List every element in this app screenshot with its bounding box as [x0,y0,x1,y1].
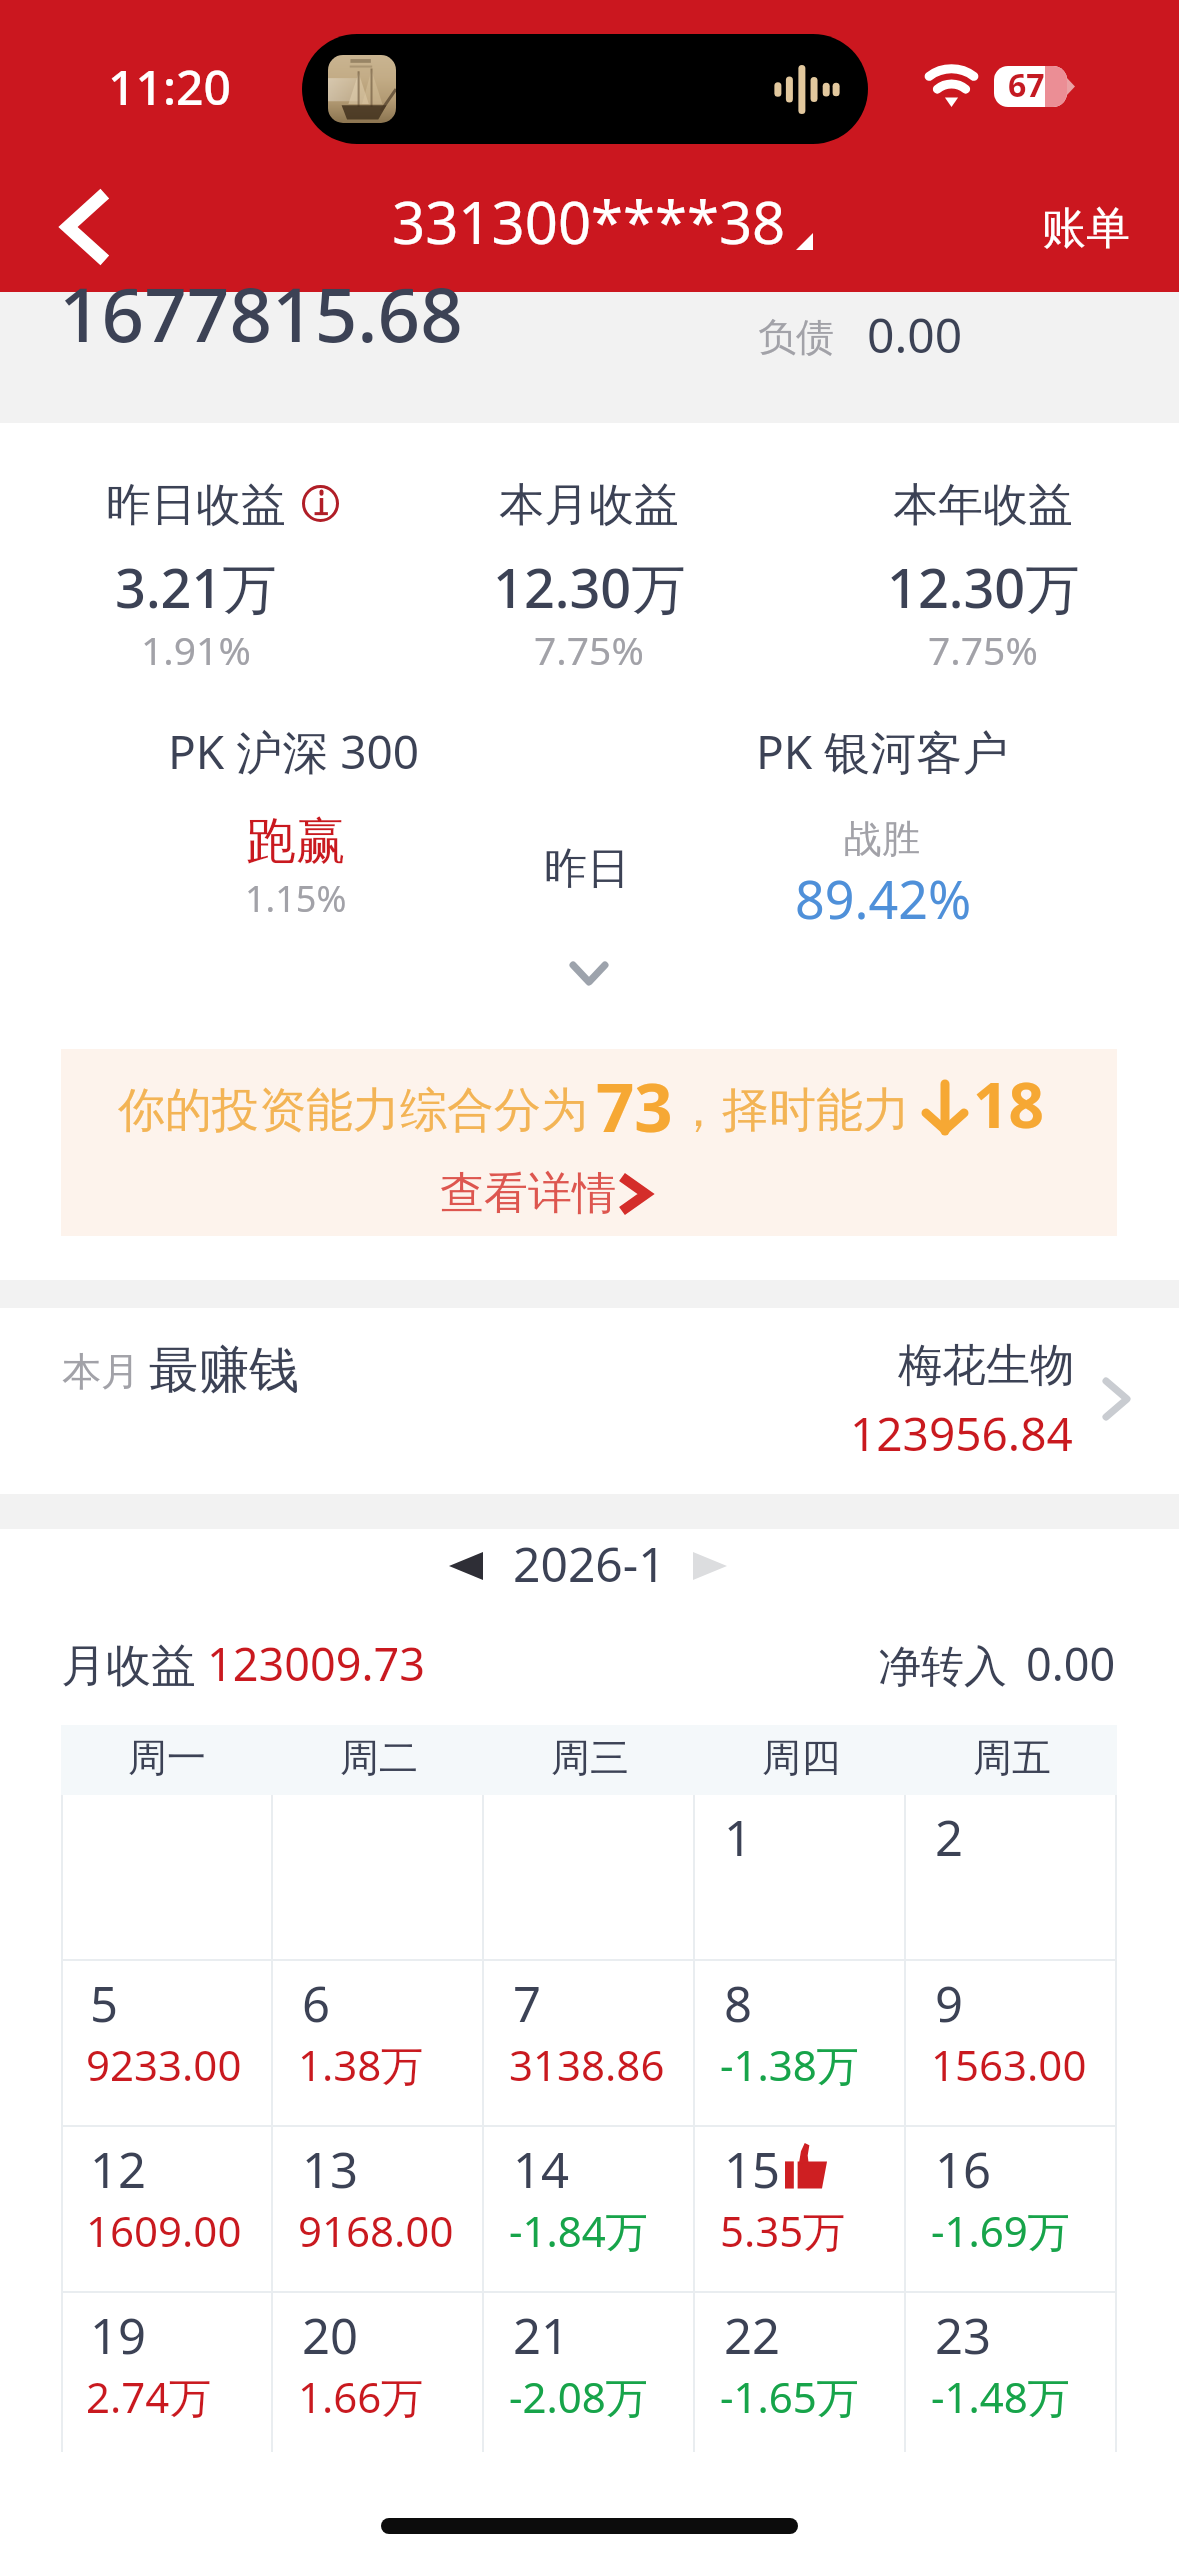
button[interactable]: 14 [484,2127,695,2293]
staticText: 19 [90,2302,147,2369]
staticText: -1.65万 [720,2368,859,2425]
button[interactable]: 19 [61,2293,273,2452]
staticText: 13 [302,2136,359,2203]
button[interactable]: Expand [529,926,649,1021]
staticText: 1563.00 [931,2036,1087,2093]
button[interactable]: 本月收益 [329,477,849,534]
staticText: PK 沪深 300 [168,720,420,783]
staticText: 7.75% [928,623,1038,676]
staticText: 12.30万 [493,550,686,624]
staticText: 1 [724,1804,753,1871]
staticText: 331300****38 [392,182,786,261]
staticText: 123009.73 [207,1633,425,1694]
staticText: 12.30万 [887,550,1080,624]
staticText: 20 [302,2302,359,2369]
staticText: 昨日收益 [106,477,286,534]
staticText: 最赚钱 [149,1339,299,1402]
button[interactable]: 15 [695,2127,906,2293]
button[interactable]: 本年收益 [723,477,1179,534]
staticText: 7.75% [534,623,644,676]
staticText: 11:20 [108,54,231,119]
button[interactable]: Previous month [418,1518,514,1614]
staticText: 周二 [340,1733,418,1782]
staticText: 周四 [762,1733,840,1782]
staticText: 1.66万 [298,2368,424,2425]
button[interactable]: 6 [273,1961,484,2127]
button[interactable]: 账单 [1010,176,1150,276]
staticText: 8 [724,1970,753,2037]
button[interactable]: 12 [61,2127,273,2293]
button[interactable]: 昨日收益 [0,477,456,534]
staticText: 9 [935,1970,964,2037]
staticText: -1.38万 [720,2036,859,2093]
staticText: ，择时能力 [675,1081,910,1140]
staticText: 1677815.68 [59,262,463,363]
staticText: -2.08万 [509,2368,648,2425]
staticText: 净转入 [878,1640,1007,1694]
button[interactable]: 9 [906,1961,1117,2127]
button[interactable]: 16 [906,2127,1117,2293]
button[interactable]: 331300****38 [380,180,823,280]
staticText: 1.38万 [298,2036,424,2093]
staticText: 21 [513,2302,570,2369]
staticText: 3.21万 [115,550,277,624]
button[interactable] [61,1795,273,1961]
staticText: 9168.00 [298,2202,454,2259]
button[interactable]: 8 [695,1961,906,2127]
staticText: 14 [513,2136,570,2203]
staticText: 跑赢 [246,810,346,873]
staticText: 1.91% [141,623,251,676]
staticText: 1.15% [245,874,347,923]
button[interactable]: PK 银河客户 [622,720,1142,783]
button[interactable]: 2 [906,1795,1117,1961]
staticText: 周三 [551,1733,629,1782]
button[interactable]: Back [24,167,144,287]
staticText: 本月收益 [499,477,679,534]
button[interactable]: 20 [273,2293,484,2452]
staticText: 73 [596,1060,673,1151]
button[interactable]: 5 [61,1961,273,2127]
staticText: 2 [935,1804,964,1871]
button[interactable]: Next month [662,1518,758,1614]
staticText: 0.00 [1026,1633,1116,1694]
staticText: PK 银河客户 [756,720,1009,783]
staticText: 67 [1008,66,1045,104]
staticText: 2.74万 [86,2368,212,2425]
button[interactable]: PK 沪深 300 [34,720,554,783]
staticText: 账单 [1042,201,1130,256]
staticText: 战胜 [844,815,920,863]
button[interactable]: 7 [484,1961,695,2127]
button[interactable]: 13 [273,2127,484,2293]
staticText: 周一 [128,1733,206,1782]
staticText: 0.00 [867,302,963,367]
staticText: 1609.00 [86,2202,242,2259]
button[interactable]: 21 [484,2293,695,2452]
button[interactable] [273,1795,484,1961]
button[interactable]: 本月 [0,1308,1179,1494]
staticText: 你的投资能力综合分为 [118,1081,588,1140]
staticText: 16 [935,2136,992,2203]
staticText: 本月 [62,1347,140,1396]
staticText: 梅花生物 [898,1338,1074,1393]
staticText: 18 [973,1062,1044,1146]
staticText: 22 [724,2302,781,2369]
staticText: 9233.00 [86,2036,242,2093]
button[interactable]: 你的投资能力综合分为 [61,1049,1117,1236]
staticText: -1.69万 [931,2202,1070,2259]
staticText: 周五 [973,1733,1051,1782]
staticText: 本年收益 [893,477,1073,534]
staticText: -1.84万 [509,2202,648,2259]
button[interactable] [484,1795,695,1961]
staticText: 15 [724,2136,781,2203]
staticText: 12 [90,2136,147,2203]
staticText: -1.48万 [931,2368,1070,2425]
staticText: 89.42% [795,863,972,934]
staticText: 昨日 [544,842,630,896]
button[interactable]: 23 [906,2293,1117,2452]
button[interactable]: 22 [695,2293,906,2452]
staticText: 6 [302,1970,331,2037]
staticText: 123956.84 [850,1402,1073,1465]
button[interactable]: 1 [695,1795,906,1961]
staticText: 查看详情 [440,1166,616,1221]
staticText: 负债 [758,313,834,361]
